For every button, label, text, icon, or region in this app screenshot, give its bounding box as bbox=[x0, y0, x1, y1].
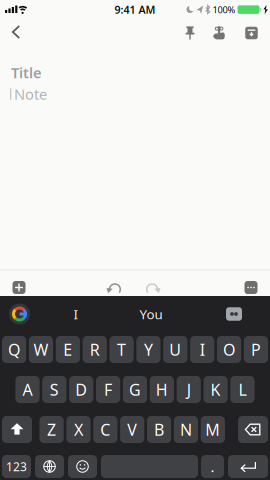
button[interactable]: You bbox=[121, 302, 181, 326]
staticText: Note bbox=[14, 84, 47, 104]
staticText: D bbox=[75, 379, 87, 400]
staticText: 100% bbox=[212, 3, 235, 16]
button[interactable]: O bbox=[217, 336, 241, 363]
button[interactable]: Shift bbox=[2, 416, 32, 443]
staticText: I bbox=[73, 305, 78, 323]
staticText: V bbox=[127, 419, 137, 440]
button[interactable]: R bbox=[83, 336, 107, 363]
staticText: X bbox=[74, 419, 83, 440]
staticText: G bbox=[129, 379, 141, 400]
staticText: I bbox=[200, 339, 205, 360]
button[interactable]: Back bbox=[6, 22, 26, 42]
button[interactable]: Delete bbox=[238, 416, 268, 443]
button[interactable]: T bbox=[109, 336, 134, 363]
staticText: O bbox=[223, 339, 235, 360]
staticText: You bbox=[139, 305, 162, 323]
button[interactable]: 123 bbox=[2, 455, 31, 478]
staticText: Y bbox=[144, 339, 153, 360]
staticText: Z bbox=[47, 419, 56, 440]
button[interactable]: V bbox=[120, 416, 144, 443]
button[interactable]: M bbox=[201, 416, 225, 443]
button[interactable]: Add bbox=[12, 281, 25, 294]
button[interactable]: K bbox=[203, 376, 228, 403]
staticText: B bbox=[154, 419, 164, 440]
button[interactable]: U bbox=[163, 336, 187, 363]
button[interactable]: J bbox=[177, 376, 201, 403]
button[interactable]: B bbox=[147, 416, 171, 443]
staticText: U bbox=[169, 339, 181, 360]
staticText: L bbox=[238, 379, 246, 400]
button[interactable]: Next keyboard bbox=[35, 455, 64, 478]
staticText: K bbox=[211, 379, 221, 400]
button[interactable]: H bbox=[150, 376, 174, 403]
button[interactable]: P bbox=[244, 336, 268, 363]
staticText: Title bbox=[11, 63, 42, 82]
staticText: S bbox=[50, 379, 59, 400]
staticText: P bbox=[251, 339, 261, 360]
button[interactable]: S bbox=[42, 376, 66, 403]
button[interactable]: C bbox=[93, 416, 117, 443]
button[interactable]: L bbox=[230, 376, 255, 403]
staticText: F bbox=[104, 379, 112, 400]
staticText: M bbox=[205, 419, 220, 440]
staticText: W bbox=[33, 339, 48, 360]
staticText: Q bbox=[8, 339, 20, 360]
button[interactable]: Emoji bbox=[68, 455, 97, 478]
button[interactable]: Archive bbox=[245, 27, 258, 39]
button[interactable]: More bbox=[244, 281, 257, 294]
button[interactable]: Return bbox=[228, 455, 268, 478]
button[interactable]: Reminder bbox=[212, 26, 226, 40]
button[interactable]: Redo bbox=[144, 280, 160, 293]
button[interactable]: Google bbox=[9, 303, 30, 324]
button[interactable]: I bbox=[51, 302, 101, 326]
button[interactable]: Pin bbox=[183, 26, 197, 40]
staticText: 9:41 AM bbox=[114, 2, 155, 17]
staticText: H bbox=[156, 379, 168, 400]
staticText: J bbox=[187, 379, 191, 400]
button[interactable]: A bbox=[15, 376, 40, 403]
staticText: R bbox=[90, 339, 100, 360]
staticText: T bbox=[117, 339, 126, 360]
staticText: C bbox=[100, 419, 110, 440]
button[interactable]: W bbox=[29, 336, 53, 363]
button[interactable]: X bbox=[66, 416, 91, 443]
button[interactable]: I bbox=[190, 336, 214, 363]
staticText: 123 bbox=[6, 458, 27, 474]
staticText: N bbox=[180, 419, 192, 440]
button[interactable]: Z bbox=[39, 416, 64, 443]
button[interactable]: G bbox=[123, 376, 147, 403]
button[interactable]: D bbox=[69, 376, 93, 403]
button[interactable]: F bbox=[96, 376, 120, 403]
button[interactable]: Q bbox=[2, 336, 26, 363]
button[interactable]: E bbox=[56, 336, 80, 363]
staticText: A bbox=[22, 379, 32, 400]
button[interactable]: Y bbox=[136, 336, 160, 363]
staticText: E bbox=[63, 339, 72, 360]
staticText: . bbox=[210, 457, 214, 476]
button[interactable]: N bbox=[174, 416, 198, 443]
button[interactable]: Undo bbox=[106, 280, 122, 293]
button[interactable]: . bbox=[201, 455, 224, 478]
button[interactable]: GIF bbox=[226, 307, 242, 321]
